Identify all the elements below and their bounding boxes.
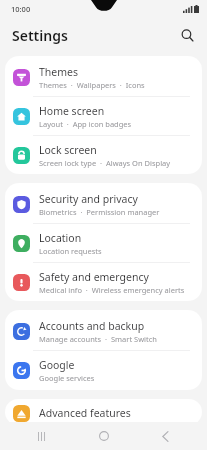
staticText: Advanced features <box>39 406 131 420</box>
staticText: Screen lock type · Always On Display <box>39 158 171 168</box>
staticText: Lock screen <box>39 143 97 157</box>
staticText: Safety and emergency <box>39 270 149 284</box>
staticText: Google <box>39 358 75 372</box>
button[interactable]: Security and privacy <box>5 185 202 223</box>
button[interactable]: Search <box>175 23 199 47</box>
staticText: Location requests <box>39 246 102 256</box>
staticText: Security and privacy <box>39 192 138 206</box>
staticText: Biometrics · Permission manager <box>39 207 160 217</box>
staticText: Medical info · Wireless emergency alerts <box>39 285 185 295</box>
button[interactable]: Back <box>145 424 185 448</box>
button[interactable]: Themes <box>5 58 202 96</box>
button[interactable]: Safety and emergency <box>5 263 202 301</box>
staticText: Manage accounts · Smart Switch <box>39 334 157 344</box>
staticText: Themes <box>39 65 79 79</box>
button[interactable]: Recent apps <box>22 424 62 448</box>
staticText: Settings <box>12 26 68 45</box>
button[interactable]: Home <box>84 424 124 448</box>
staticText: Google services <box>39 373 95 383</box>
staticText: Home screen <box>39 104 105 118</box>
button[interactable]: Google <box>5 351 202 389</box>
button[interactable]: Location <box>5 224 202 262</box>
button[interactable]: Lock screen <box>5 136 202 174</box>
staticText: Location <box>39 231 82 245</box>
button[interactable]: Accounts and backup <box>5 312 202 350</box>
staticText: Accounts and backup <box>39 319 145 333</box>
staticText: 10:00 <box>11 4 31 14</box>
staticText: Layout · App icon badges <box>39 119 132 129</box>
staticText: Themes · Wallpapers · Icons <box>39 80 145 90</box>
button[interactable]: Home screen <box>5 97 202 135</box>
button[interactable]: Advanced features <box>5 401 202 425</box>
